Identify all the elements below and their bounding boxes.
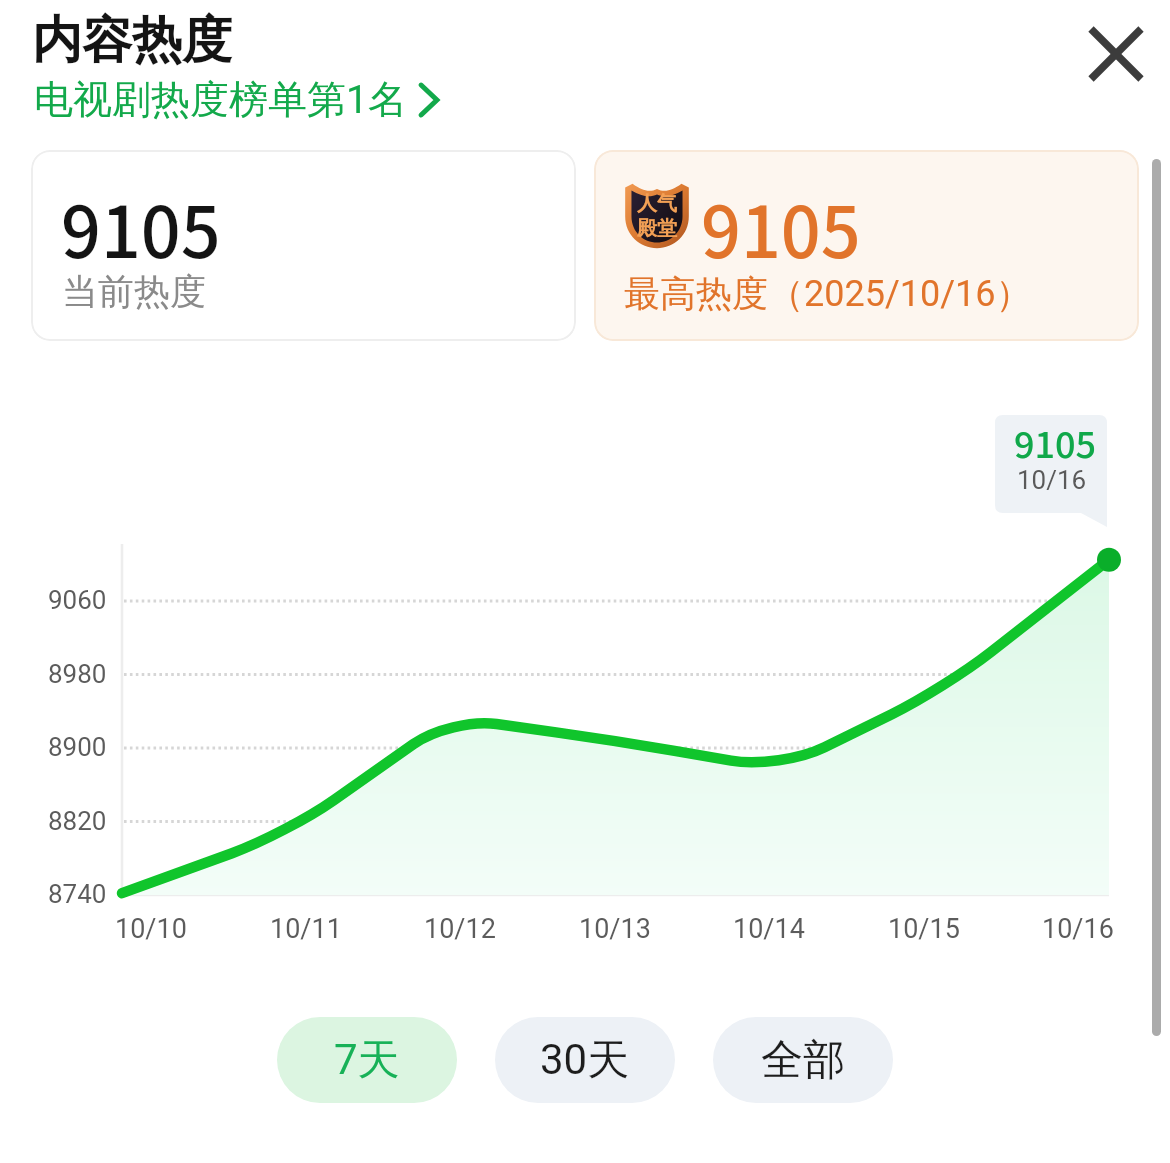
staticText: 9105 — [701, 177, 861, 278]
staticText: 30天 — [540, 1034, 630, 1087]
button[interactable]: 人气 — [594, 150, 1139, 341]
staticText: 7天 — [334, 1034, 400, 1087]
staticText: 10/12 — [424, 913, 496, 945]
staticText: 10/10 — [115, 913, 187, 945]
button[interactable]: 30天 — [495, 1017, 675, 1103]
staticText: 9105 — [1014, 416, 1097, 468]
button[interactable]: 7天 — [277, 1017, 457, 1103]
staticText: 最高热度（2025/10/16） — [624, 271, 1032, 316]
button[interactable]: 9105 — [31, 150, 576, 341]
button[interactable]: 全部 — [713, 1017, 893, 1103]
staticText: 10/16 — [1017, 465, 1087, 495]
staticText: 10/11 — [270, 913, 342, 945]
staticText: 10/15 — [888, 913, 960, 945]
staticText: 8980 — [48, 659, 107, 689]
staticText: 8820 — [48, 806, 107, 836]
staticText: 电视剧热度榜单第1名 — [34, 75, 407, 124]
staticText: 内容热度 — [32, 9, 232, 72]
staticText: 9060 — [48, 585, 107, 615]
staticText: 全部 — [761, 1034, 845, 1087]
staticText: 8740 — [48, 879, 107, 909]
staticText: 殿堂 — [637, 216, 677, 241]
button[interactable]: 电视剧热度榜单第1名 — [30, 71, 445, 128]
staticText: 当前热度 — [62, 269, 206, 314]
staticText: 8900 — [48, 732, 107, 762]
button[interactable]: Close — [1062, 0, 1170, 108]
staticText: 9105 — [61, 177, 221, 278]
staticText: 10/14 — [733, 913, 805, 945]
staticText: 10/16 — [1042, 913, 1114, 945]
staticText: 人气 — [637, 191, 677, 216]
staticText: 10/13 — [579, 913, 651, 945]
